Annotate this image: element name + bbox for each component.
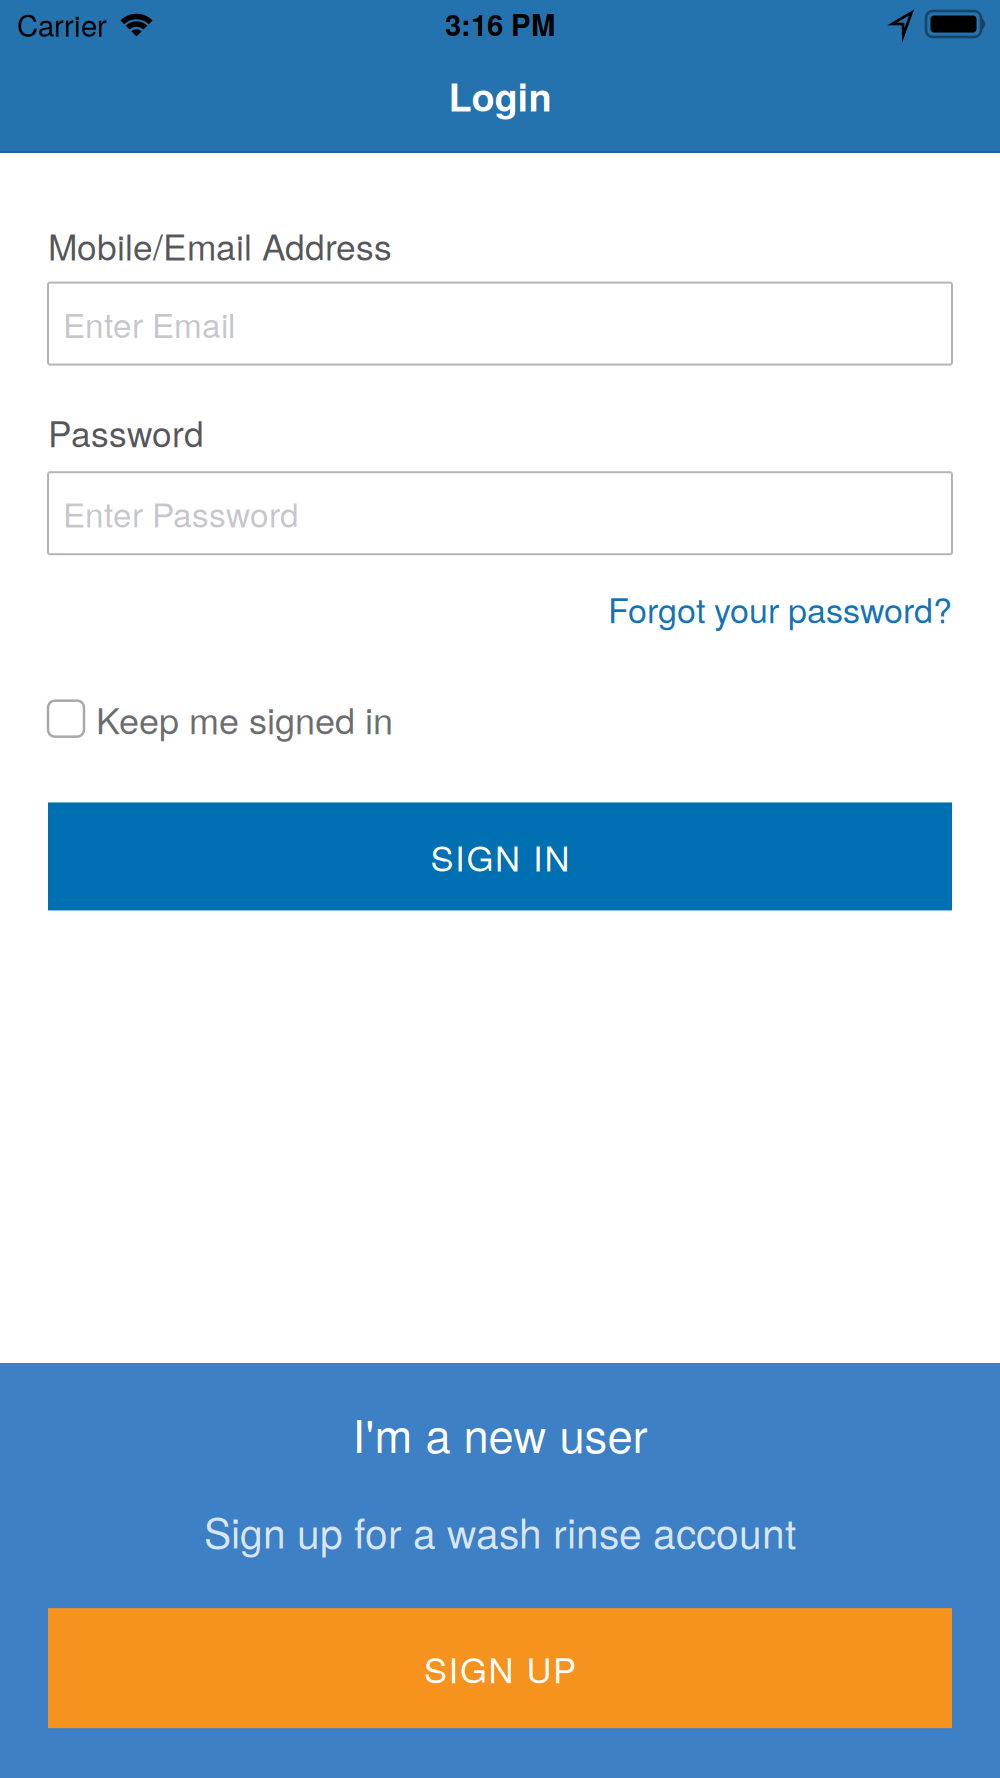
staticText: Login [448,69,551,123]
button[interactable]: Enter Password [48,472,952,554]
button[interactable]: Enter Email [48,283,952,365]
button[interactable]: Keep me signed in [48,693,393,744]
staticText: Keep me signed in [96,693,393,744]
staticText: SIGN IN [430,832,569,881]
staticText: SIGN UP [424,1643,576,1693]
staticText: Password [48,407,204,457]
staticText: I'm a new user [352,1401,647,1466]
staticText: 3:16 PM [445,3,555,45]
button[interactable]: Forgot your password? [608,584,952,633]
staticText: Mobile/Email Address [48,220,392,271]
button[interactable]: SIGN IN [48,802,952,910]
staticText: Enter Password [63,489,299,537]
button[interactable]: SIGN UP [48,1608,952,1728]
staticText: Forgot your password? [608,584,952,633]
staticText: Enter Email [63,300,235,347]
staticText: Sign up for a wash rinse account [204,1502,796,1560]
staticText: Carrier [17,3,107,45]
